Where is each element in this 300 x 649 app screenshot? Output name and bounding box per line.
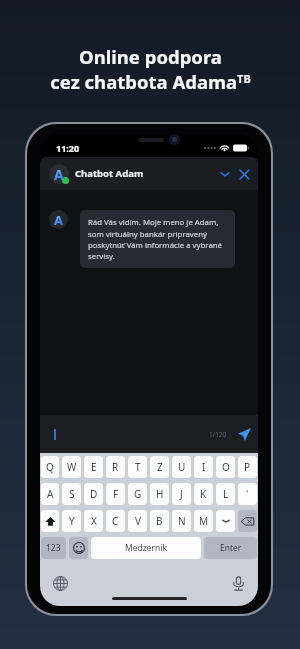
button[interactable]: Emoji — [69, 537, 88, 559]
button[interactable]: Enter — [204, 537, 257, 559]
staticText: D — [90, 487, 98, 501]
staticText: F — [113, 487, 119, 501]
staticText: Chatbot Adam — [75, 167, 144, 180]
button[interactable]: Close chat — [235, 165, 253, 183]
staticText: Q — [46, 460, 54, 474]
staticText: ' — [246, 487, 249, 501]
button[interactable]: W — [62, 456, 81, 478]
staticText: 123 — [46, 542, 61, 554]
staticText: S — [69, 487, 75, 501]
button[interactable]: Medzerník — [91, 537, 201, 559]
staticText: C — [112, 514, 119, 528]
staticText: B — [156, 514, 163, 528]
staticText: Y — [69, 514, 75, 528]
button[interactable]: L — [216, 483, 235, 505]
button[interactable]: E — [84, 456, 103, 478]
button[interactable]: Backspace — [238, 510, 257, 532]
staticText: T — [135, 460, 141, 474]
button[interactable]: R — [106, 456, 125, 478]
button[interactable]: S — [62, 483, 81, 505]
button[interactable]: N — [172, 510, 191, 532]
staticText: J — [180, 487, 183, 501]
button[interactable]: D — [84, 483, 103, 505]
staticText: G — [134, 487, 142, 501]
staticText: A — [54, 211, 63, 229]
staticText: Rád Vás vidím. Moje meno je Adam, som vi… — [88, 217, 228, 261]
staticText: Enter — [220, 542, 242, 554]
button[interactable]: J — [172, 483, 191, 505]
button[interactable]: H — [150, 483, 169, 505]
staticText: E — [91, 460, 97, 474]
staticText: I — [202, 460, 206, 474]
button[interactable]: Change keyboard language — [50, 573, 70, 593]
staticText: W — [67, 460, 77, 474]
staticText: 11:20 — [56, 142, 80, 154]
staticText: H — [156, 487, 164, 501]
staticText: P — [244, 460, 251, 474]
button[interactable]: Z — [150, 456, 169, 478]
button[interactable]: A — [41, 483, 59, 505]
button[interactable]: M — [194, 510, 213, 532]
staticText: U — [178, 460, 186, 474]
staticText: Z — [157, 460, 163, 474]
staticText: O — [222, 460, 230, 474]
staticText: M — [199, 514, 209, 528]
button[interactable]: I — [194, 456, 213, 478]
button[interactable]: B — [150, 510, 169, 532]
staticText: L — [223, 487, 229, 501]
staticText: Medzerník — [125, 542, 168, 554]
staticText: K — [200, 487, 207, 501]
staticText: A — [54, 165, 64, 184]
button[interactable]: 123 — [41, 537, 66, 559]
button[interactable]: O — [216, 456, 235, 478]
button[interactable]: V — [128, 510, 147, 532]
staticText: A — [47, 487, 54, 501]
staticText: 1/120 — [209, 430, 227, 439]
button[interactable]: P — [238, 456, 257, 478]
button[interactable]: C — [106, 510, 125, 532]
button[interactable]: F — [106, 483, 125, 505]
button[interactable]: G — [128, 483, 147, 505]
button[interactable]: Minimize chat — [216, 165, 234, 183]
button[interactable]: Shift — [41, 510, 59, 532]
staticText: N — [178, 514, 186, 528]
button[interactable]: U — [172, 456, 191, 478]
button[interactable]: Voice input — [228, 573, 248, 593]
staticText: R — [112, 460, 119, 474]
button[interactable]: X — [84, 510, 103, 532]
staticText: Online podpora — [79, 44, 222, 69]
button[interactable]: Q — [41, 456, 59, 478]
button[interactable]: Send message — [235, 425, 253, 443]
button[interactable]: Y — [62, 510, 81, 532]
staticText: X — [91, 514, 97, 528]
button[interactable]: T — [128, 456, 147, 478]
staticText: cez chatbota AdamaTB — [50, 69, 251, 94]
staticText: V — [135, 514, 141, 528]
button[interactable]: More symbols — [216, 510, 235, 532]
button[interactable]: K — [194, 483, 213, 505]
button[interactable]: ' — [238, 483, 257, 505]
